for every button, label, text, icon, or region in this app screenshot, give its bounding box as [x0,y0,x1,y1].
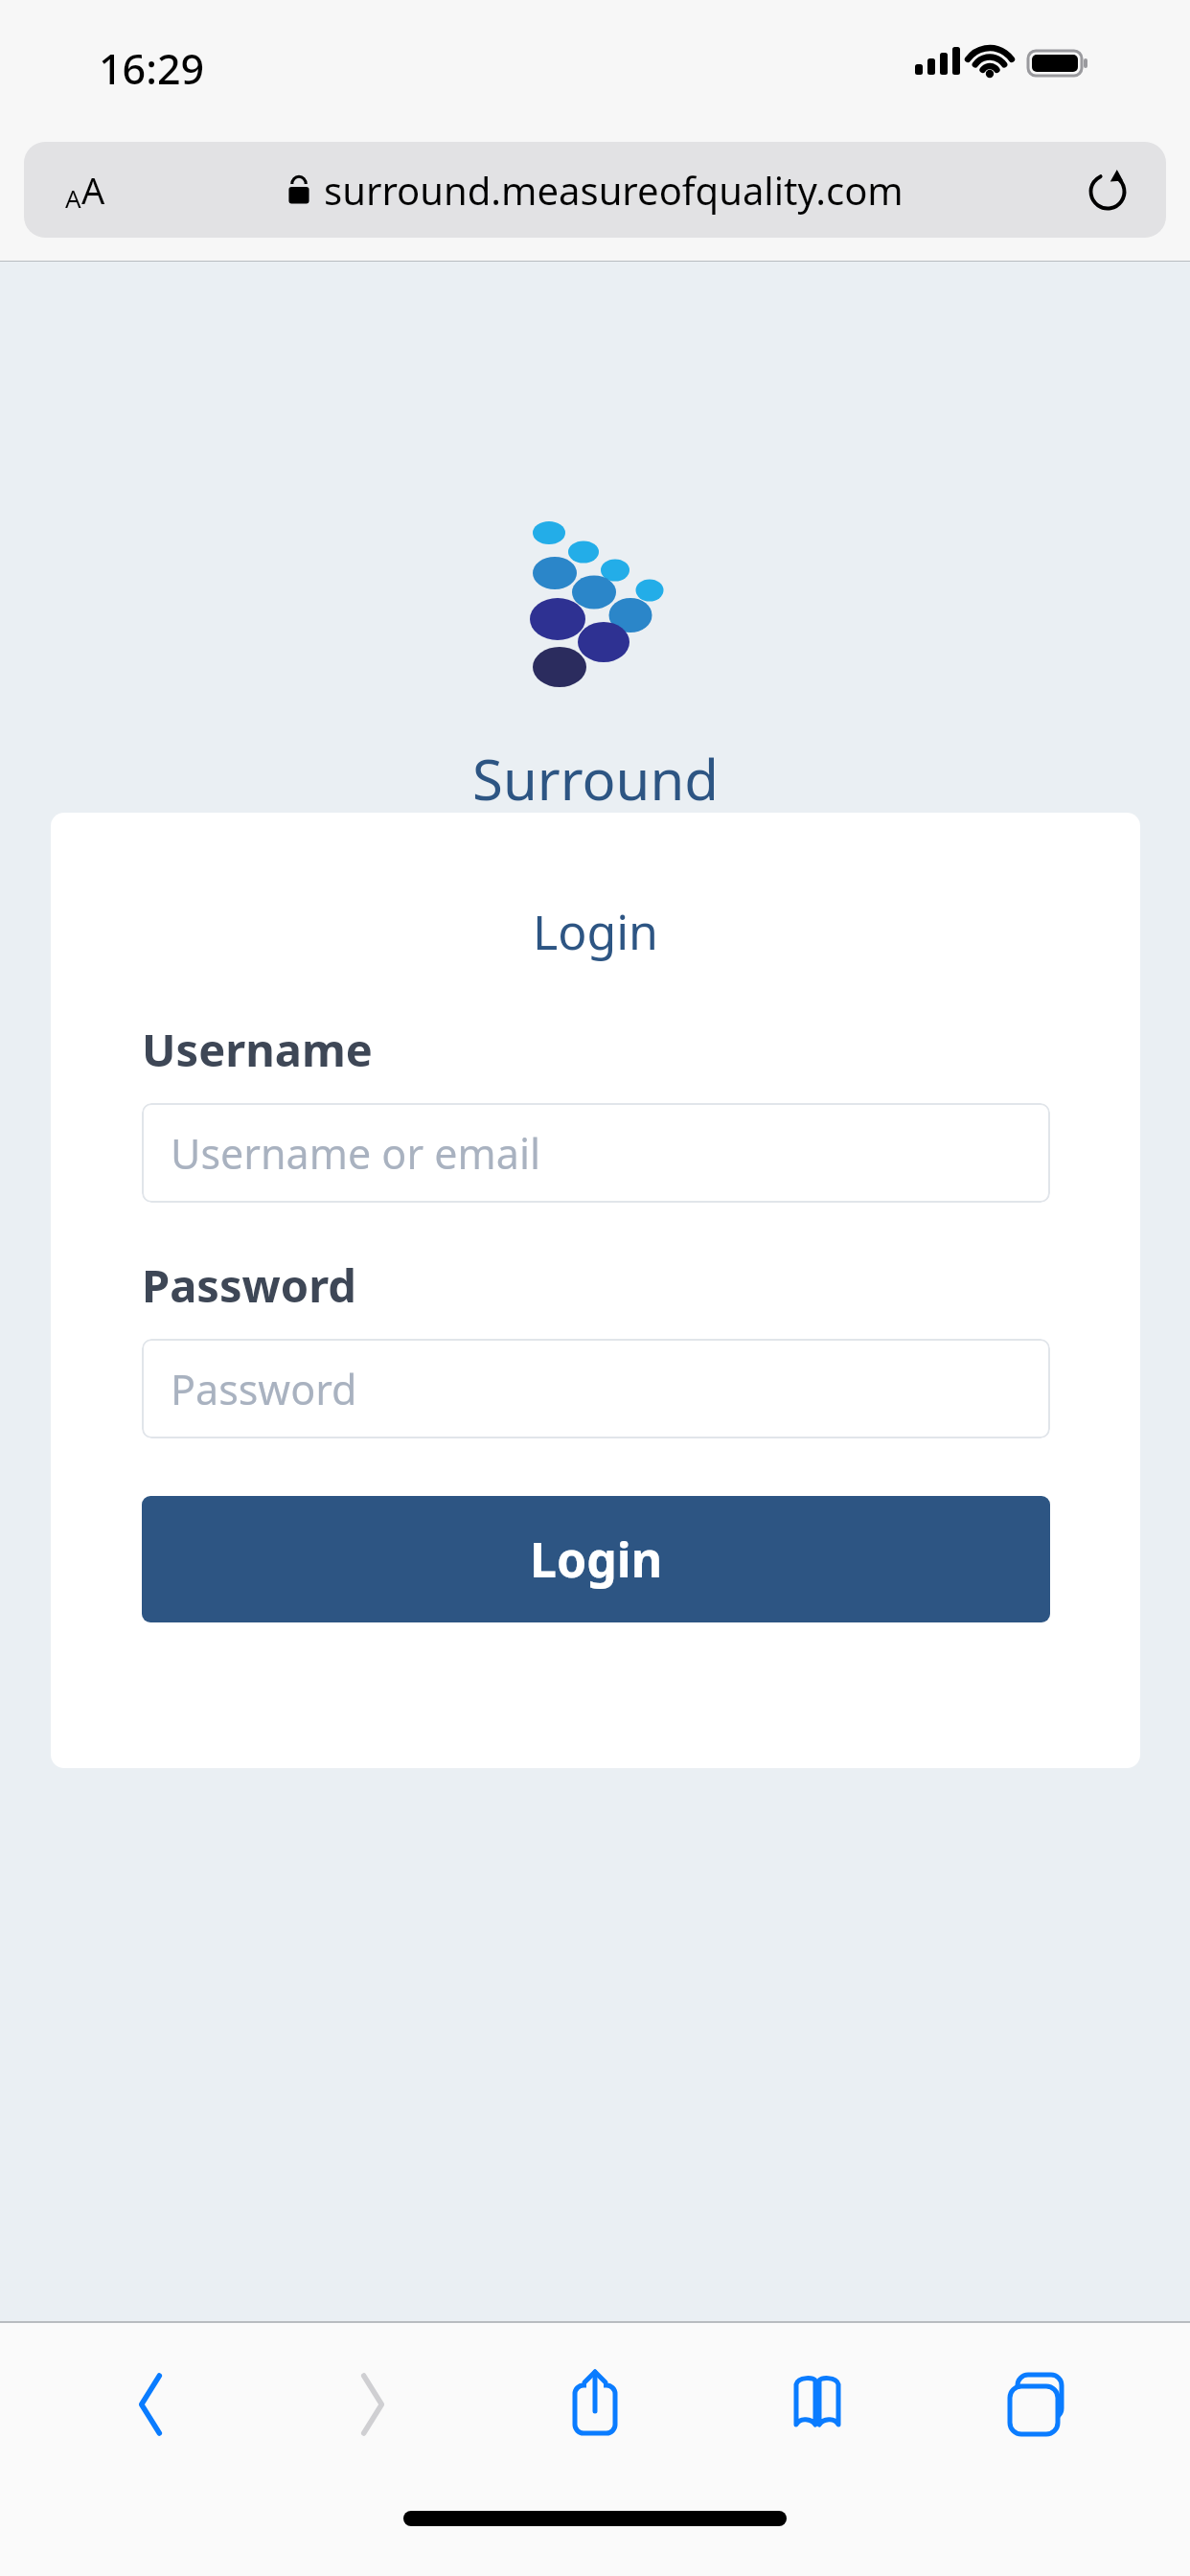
button[interactable]: Share [523,2333,667,2476]
other: Surround logo [517,514,680,677]
button[interactable]: Back [79,2333,222,2476]
button[interactable]: Page settings [41,150,129,229]
button[interactable]: Login [142,1496,1050,1622]
button[interactable]: Page settings [24,142,1166,238]
staticText: Password [142,1254,356,1316]
button[interactable]: Forward [301,2333,445,2476]
staticText: Surround [472,741,719,816]
button[interactable]: Username or email [142,1103,1050,1203]
staticText: Login [530,1527,663,1592]
staticText: 16:29 [99,40,205,97]
staticText: A [65,181,81,215]
staticText: surround.measureofquality.com [324,164,904,216]
staticText: Login [533,899,658,964]
staticText: Username or email [171,1125,541,1182]
button[interactable]: Bookmarks [745,2333,889,2476]
button[interactable]: Reload [1074,156,1141,223]
button[interactable]: Tabs [968,2333,1111,2476]
staticText: A [81,165,105,215]
button[interactable]: Password [142,1339,1050,1438]
staticText: Username [142,1019,373,1080]
staticText: Password [171,1361,357,1417]
